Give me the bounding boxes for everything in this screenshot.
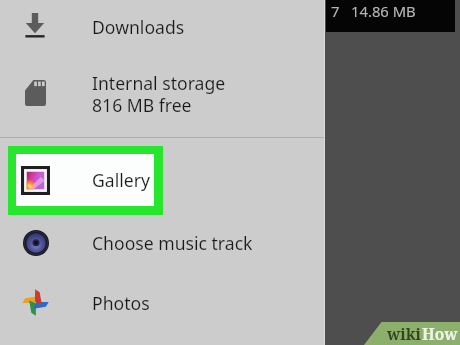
button[interactable]: Internal storage xyxy=(0,54,325,137)
staticText: Choose music track xyxy=(92,231,253,255)
staticText: 7 14.86 MB xyxy=(331,1,416,21)
staticText: Gallery xyxy=(92,168,150,192)
staticText: Internal storage xyxy=(92,71,226,95)
staticText: How xyxy=(422,323,458,344)
staticText: 816 MB free xyxy=(92,93,192,117)
button[interactable]: Photos xyxy=(0,272,325,333)
button[interactable]: Downloads xyxy=(0,0,325,54)
button[interactable]: Choose music track xyxy=(0,213,325,272)
staticText: Downloads xyxy=(92,15,185,39)
button[interactable]: Gallery xyxy=(0,146,325,214)
staticText: Photos xyxy=(92,291,150,315)
button[interactable] xyxy=(8,146,163,215)
staticText: wiki xyxy=(387,323,422,344)
